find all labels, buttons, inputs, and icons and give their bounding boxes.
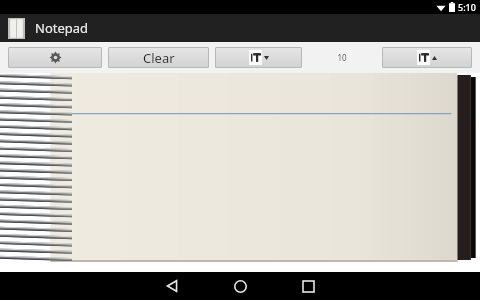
button[interactable]: Back [148, 272, 196, 300]
staticText: Clear [143, 49, 175, 67]
button[interactable]: Font size [382, 47, 472, 68]
button[interactable]: Home [216, 272, 264, 300]
button[interactable]: Settings [8, 47, 102, 68]
staticText: 10 [337, 52, 347, 63]
button[interactable]: Recent apps [284, 272, 332, 300]
button[interactable]: Clear [108, 47, 209, 68]
staticText: Notepad [35, 19, 89, 37]
button[interactable]: Font style [215, 47, 302, 68]
staticText: 5:10 [458, 1, 476, 13]
button[interactable]: Note text area [0, 73, 480, 272]
